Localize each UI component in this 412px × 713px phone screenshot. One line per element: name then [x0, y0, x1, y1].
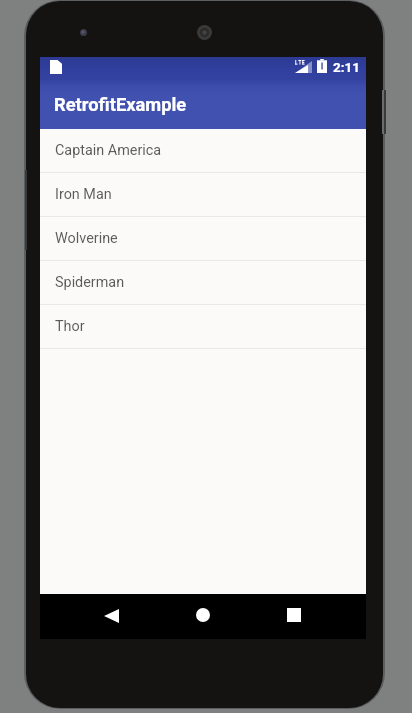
button[interactable]: Home: [183, 595, 223, 635]
staticText: Captain America: [55, 142, 162, 159]
button[interactable]: Spiderman: [40, 261, 366, 305]
button[interactable]: Back: [91, 596, 131, 636]
staticText: Spiderman: [55, 274, 125, 291]
button[interactable]: Thor: [40, 305, 366, 349]
staticText: 2:11: [333, 60, 360, 76]
button[interactable]: Wolverine: [40, 217, 366, 261]
staticText: Iron Man: [55, 186, 112, 203]
staticText: RetrofitExample: [54, 94, 187, 115]
staticText: Wolverine: [55, 230, 118, 247]
button[interactable]: Recent apps: [274, 595, 314, 635]
staticText: Thor: [55, 318, 85, 335]
button[interactable]: Iron Man: [40, 173, 366, 217]
button[interactable]: Captain America: [40, 129, 366, 173]
